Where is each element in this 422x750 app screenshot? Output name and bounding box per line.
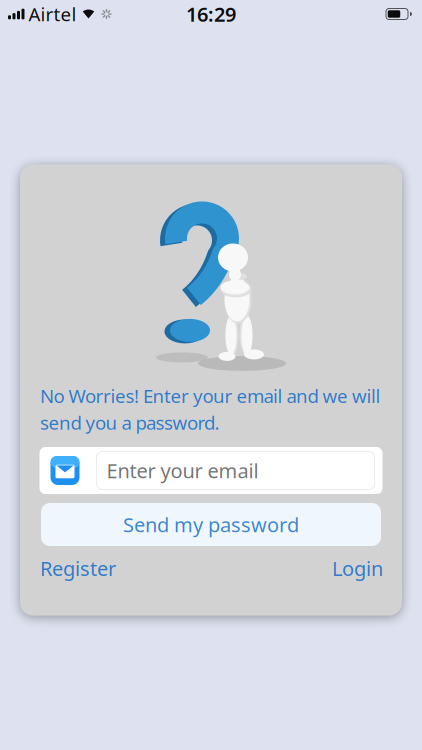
- staticText: 16:29: [186, 1, 236, 27]
- button[interactable]: Register: [40, 555, 116, 582]
- staticText: Enter your email: [106, 457, 258, 484]
- staticText: Login: [332, 555, 383, 582]
- staticText: send you a password.: [40, 410, 219, 435]
- staticText: No Worries! Enter your email and we will: [40, 383, 380, 408]
- button[interactable]: Enter your email: [39, 447, 382, 494]
- staticText: Register: [40, 555, 116, 582]
- button[interactable]: Send my password: [41, 503, 381, 546]
- staticText: Airtel: [28, 2, 76, 26]
- staticText: Send my password: [123, 511, 299, 538]
- button[interactable]: Login: [332, 555, 383, 582]
